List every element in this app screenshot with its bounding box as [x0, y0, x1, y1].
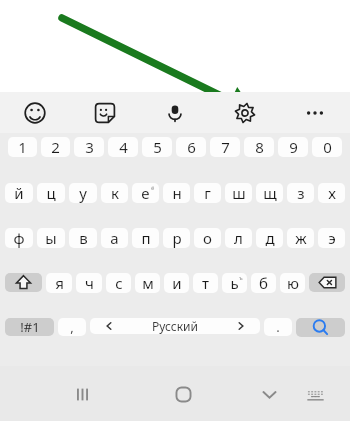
- button[interactable]: р: [163, 228, 190, 248]
- staticText: 5: [153, 137, 162, 157]
- button[interactable]: к: [101, 183, 128, 203]
- button[interactable]: ю: [280, 273, 305, 293]
- staticText: 0: [323, 137, 332, 157]
- staticText: т: [202, 273, 209, 293]
- button[interactable]: д: [256, 228, 283, 248]
- button[interactable]: Emoji: [0, 92, 70, 133]
- staticText: !#1: [20, 318, 40, 336]
- button[interactable]: Hide keyboard: [249, 374, 289, 414]
- button[interactable]: ы: [37, 228, 65, 248]
- button[interactable]: в: [69, 228, 97, 248]
- staticText: 2: [51, 137, 60, 157]
- button[interactable]: Recents: [62, 374, 102, 414]
- button[interactable]: а: [101, 228, 128, 248]
- staticText: б: [259, 273, 268, 293]
- staticText: ф: [13, 228, 25, 248]
- button[interactable]: 9: [278, 137, 308, 157]
- staticText: я: [55, 273, 64, 293]
- staticText: ж: [295, 228, 307, 248]
- button[interactable]: 3: [74, 137, 104, 157]
- button[interactable]: х: [318, 183, 345, 203]
- staticText: 1: [18, 137, 27, 157]
- button[interactable]: 8: [244, 137, 274, 157]
- button[interactable]: 7: [210, 137, 240, 157]
- staticText: е: [141, 183, 150, 203]
- button[interactable]: з: [287, 183, 314, 203]
- button[interactable]: 5: [142, 137, 172, 157]
- button[interactable]: 2: [41, 137, 70, 157]
- staticText: м: [142, 273, 154, 293]
- button[interactable]: ч: [76, 273, 102, 293]
- staticText: ь: [230, 273, 239, 293]
- button[interactable]: Settings: [210, 92, 280, 133]
- staticText: й: [14, 183, 24, 203]
- button[interactable]: Home: [163, 374, 203, 414]
- staticText: ы: [45, 228, 57, 248]
- button[interactable]: б: [251, 273, 276, 293]
- staticText: х: [328, 183, 336, 203]
- staticText: с: [115, 273, 123, 293]
- staticText: ,: [70, 318, 74, 336]
- staticText: 4: [119, 137, 128, 157]
- staticText: ю: [287, 273, 299, 293]
- button[interactable]: .: [264, 318, 292, 336]
- button[interactable]: 4: [108, 137, 138, 157]
- button[interactable]: е: [132, 183, 159, 203]
- button[interactable]: г: [194, 183, 221, 203]
- button[interactable]: о: [194, 228, 221, 248]
- staticText: а: [110, 228, 119, 248]
- button[interactable]: т: [193, 273, 218, 293]
- staticText: ш: [232, 183, 246, 203]
- staticText: ъ: [239, 274, 243, 282]
- staticText: щ: [263, 183, 277, 203]
- button[interactable]: ж: [287, 228, 314, 248]
- button[interactable]: !#1: [5, 318, 54, 336]
- staticText: .: [276, 318, 280, 336]
- staticText: 8: [255, 137, 264, 157]
- button[interactable]: Voice input: [140, 92, 210, 133]
- staticText: 9: [289, 137, 298, 157]
- button[interactable]: с: [106, 273, 131, 293]
- button[interactable]: 0: [312, 137, 342, 157]
- button[interactable]: ф: [5, 228, 33, 248]
- staticText: п: [141, 228, 151, 248]
- staticText: 6: [187, 137, 196, 157]
- button[interactable]: э: [318, 228, 345, 248]
- button[interactable]: ш: [225, 183, 252, 203]
- button[interactable]: Change keyboard: [295, 374, 335, 414]
- staticText: з: [297, 183, 305, 203]
- staticText: Русский: [152, 318, 198, 334]
- button[interactable]: Backspace: [309, 273, 345, 292]
- button[interactable]: н: [163, 183, 190, 203]
- staticText: ё: [151, 184, 155, 192]
- staticText: р: [172, 228, 182, 248]
- button[interactable]: л: [225, 228, 252, 248]
- staticText: о: [203, 228, 212, 248]
- button[interactable]: Shift: [5, 273, 42, 292]
- staticText: 3: [85, 137, 94, 157]
- button[interactable]: Stickers: [70, 92, 140, 133]
- button[interactable]: 6: [176, 137, 206, 157]
- button[interactable]: м: [135, 273, 160, 293]
- button[interactable]: щ: [256, 183, 283, 203]
- button[interactable]: ц: [37, 183, 65, 203]
- button[interactable]: и: [164, 273, 189, 293]
- staticText: и: [172, 273, 182, 293]
- staticText: л: [234, 228, 243, 248]
- button[interactable]: ,: [58, 318, 86, 336]
- staticText: г: [204, 183, 211, 203]
- button[interactable]: Русский: [90, 318, 260, 334]
- button[interactable]: й: [5, 183, 33, 203]
- button[interactable]: п: [132, 228, 159, 248]
- staticText: ч: [85, 273, 94, 293]
- staticText: в: [79, 228, 88, 248]
- button[interactable]: у: [69, 183, 97, 203]
- staticText: ц: [46, 183, 56, 203]
- staticText: 7: [221, 137, 230, 157]
- button[interactable]: я: [46, 273, 72, 293]
- staticText: д: [265, 228, 275, 248]
- button[interactable]: Search: [296, 318, 345, 337]
- button[interactable]: ь: [222, 273, 247, 293]
- button[interactable]: 1: [8, 137, 37, 157]
- button[interactable]: More options: [280, 92, 350, 133]
